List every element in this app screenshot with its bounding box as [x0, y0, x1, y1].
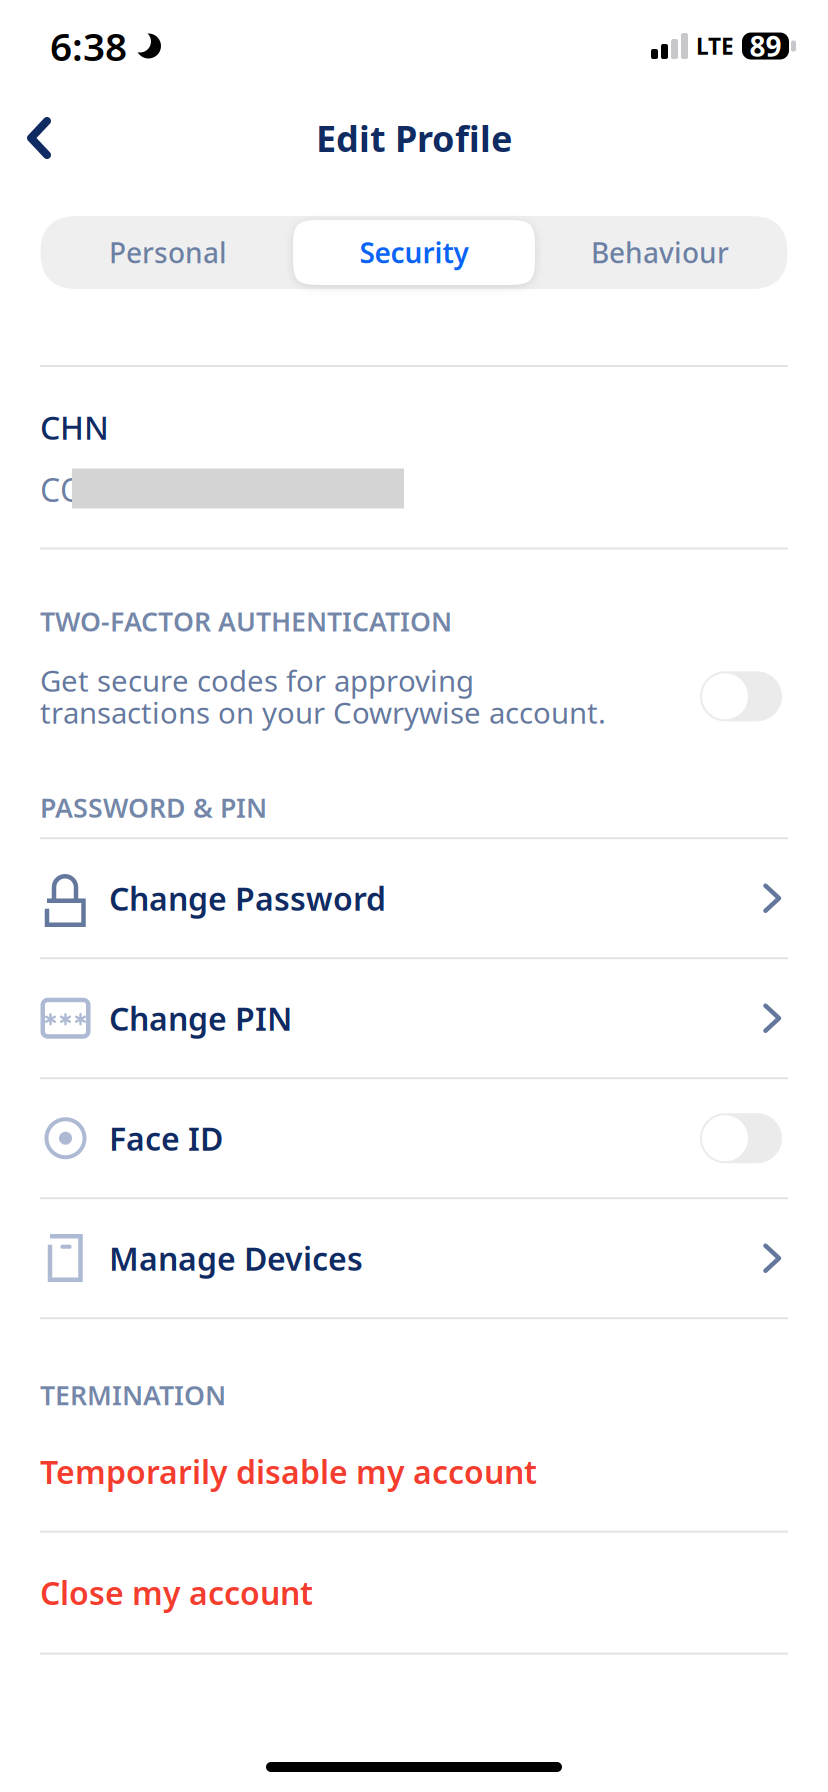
- staticText: 89: [749, 27, 781, 65]
- staticText: Get secure codes for approving: [40, 661, 474, 700]
- staticText: TWO-FACTOR AUTHENTICATION: [40, 603, 452, 639]
- staticText: TERMINATION: [40, 1377, 226, 1413]
- button[interactable]: Manage Devices: [40, 1199, 788, 1317]
- staticText: Manage Devices: [109, 1237, 363, 1279]
- button[interactable]: Security: [293, 220, 535, 285]
- staticText: Security: [359, 234, 468, 271]
- staticText: Change Password: [109, 877, 386, 919]
- staticText: Personal: [109, 234, 227, 271]
- button[interactable]: Back: [0, 102, 78, 174]
- staticText: Change PIN: [109, 997, 292, 1039]
- staticText: LTE: [696, 31, 734, 61]
- button[interactable]: Face ID: [40, 1079, 788, 1197]
- staticText: COWRYWISE: [40, 468, 230, 511]
- staticText: Temporarily disable my account: [40, 1450, 537, 1493]
- staticText: Edit Profile: [316, 114, 512, 162]
- staticText: CHN: [40, 406, 109, 448]
- staticText: 6:38: [50, 20, 127, 72]
- staticText: PASSWORD & PIN: [40, 790, 267, 825]
- button[interactable]: Change PIN: [40, 959, 788, 1077]
- button[interactable]: Temporarily disable my account: [40, 1413, 788, 1531]
- staticText: transactions on your Cowrywise account.: [40, 693, 606, 732]
- staticText: Face ID: [109, 1117, 223, 1159]
- button[interactable]: Change Password: [40, 839, 788, 957]
- staticText: Behaviour: [591, 234, 729, 271]
- button[interactable]: Personal: [43, 216, 293, 289]
- button[interactable]: Close my account: [40, 1533, 788, 1653]
- staticText: Close my account: [40, 1571, 313, 1614]
- button[interactable]: Behaviour: [535, 216, 785, 289]
